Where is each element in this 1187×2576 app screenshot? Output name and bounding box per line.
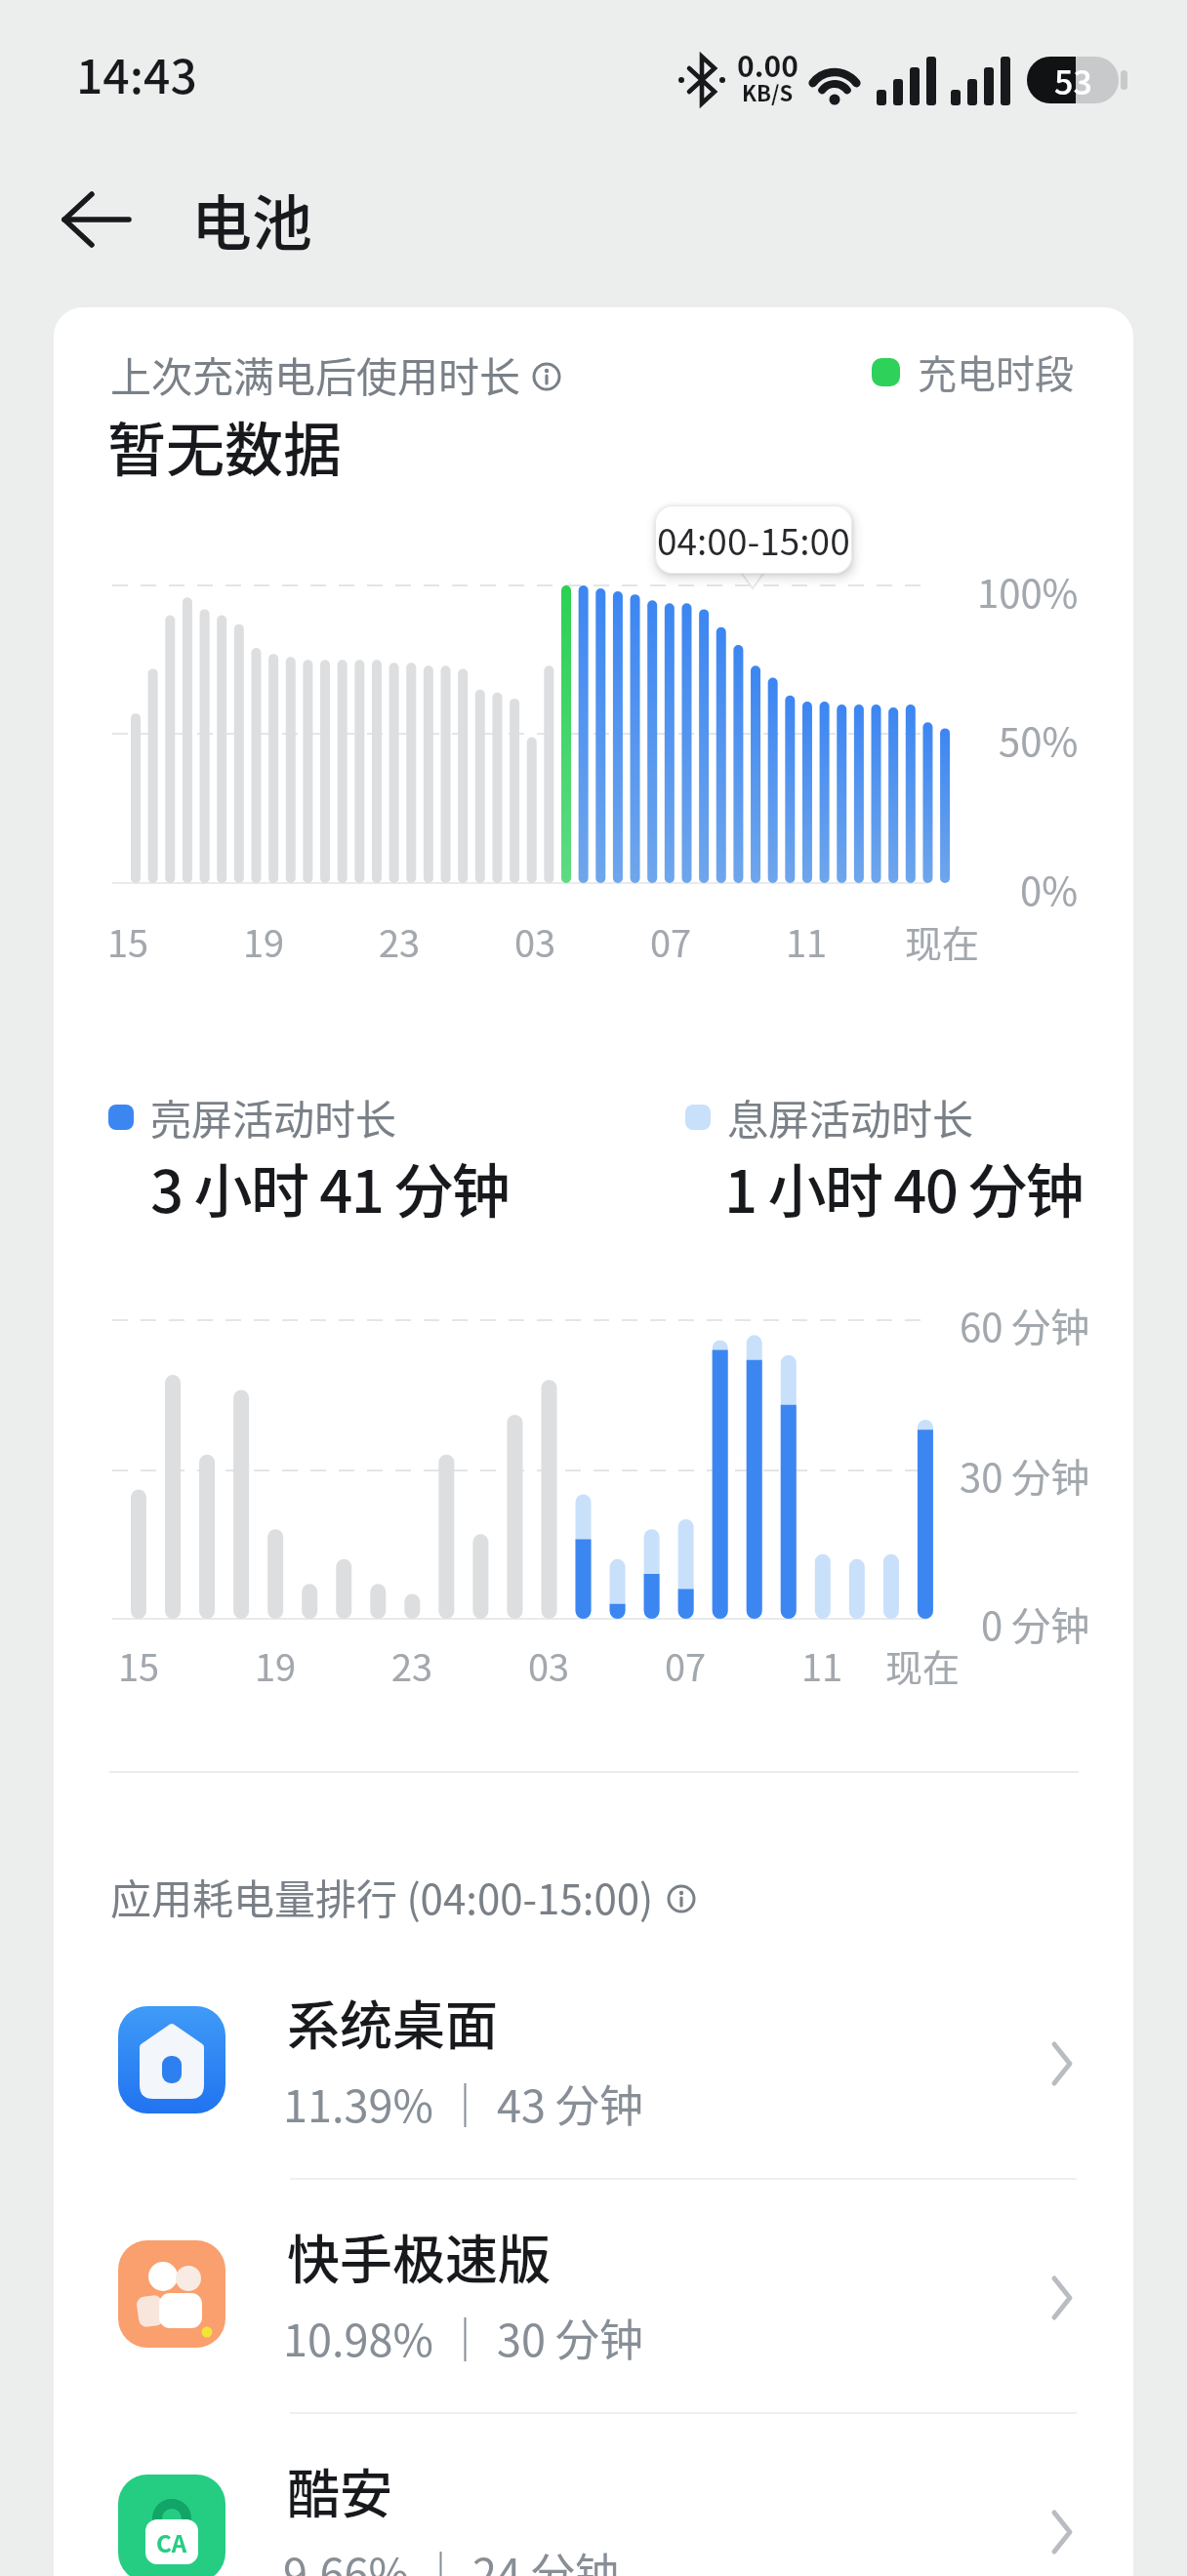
staticText: 53 [1054,57,1092,103]
staticText: 03 [514,914,556,968]
staticText: 19 [243,914,285,968]
staticText: 30 分钟 [960,1447,1090,1504]
staticText: 0 分钟 [981,1595,1090,1652]
staticText: 亮屏活动时长 [150,1087,397,1147]
staticText: 现在 [905,914,980,968]
staticText: 酷安 [287,2452,392,2528]
staticText: 23 [379,914,421,968]
staticText: 0.00 [737,43,798,85]
staticText: 3 小时 41 分钟 [150,1145,510,1229]
button[interactable]: CA [54,2454,1133,2576]
staticText: 0% [1020,861,1079,917]
staticText: 03 [528,1638,570,1692]
staticText: 04:00-15:00 [657,513,850,566]
staticText: 充电时段 [918,343,1074,400]
staticText: 07 [665,1638,707,1692]
staticText: 快手极速版 [287,2218,551,2294]
staticText: 15 [107,914,149,968]
staticText: 1 小时 40 分钟 [724,1145,1084,1229]
staticText: 系统桌面 [287,1984,498,2060]
staticText: 上次充满电后使用时长 [110,344,521,404]
staticText: 息屏活动时长 [727,1087,974,1147]
staticText: 电池 [191,176,313,263]
button[interactable]: 系统桌面 [54,1986,1133,2220]
staticText: 11.39% ｜ 43 分钟 [283,2072,644,2135]
staticText: 07 [650,914,692,968]
staticText: 100% [977,563,1079,620]
staticText: 9.66% ｜ 24 分钟 [283,2540,620,2576]
staticText: CA [156,2525,187,2559]
button[interactable]: 快手极速版 [54,2220,1133,2454]
staticText: 50% [999,711,1079,768]
staticText: 19 [255,1638,297,1692]
staticText: 10.98% ｜ 30 分钟 [283,2306,644,2369]
staticText: 60 分钟 [960,1297,1090,1353]
staticText: 暂无数据 [107,403,342,488]
staticText: 应用耗电量排行 (04:00-15:00) [110,1867,654,1926]
button[interactable] [49,176,146,263]
staticText: KB/S [742,76,794,107]
staticText: 11 [801,1638,843,1692]
staticText: 15 [118,1638,160,1692]
staticText: 23 [391,1638,433,1692]
staticText: 11 [786,914,828,968]
staticText: 14:43 [76,39,197,107]
staticText: 现在 [885,1638,961,1692]
